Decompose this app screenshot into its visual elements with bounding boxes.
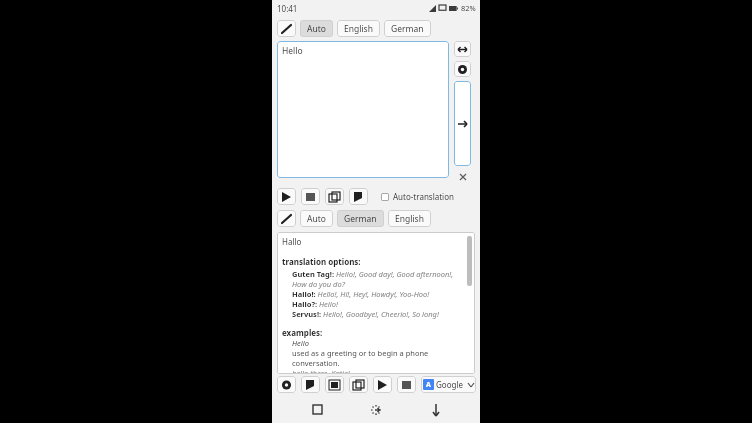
button[interactable]: Hide keyboard <box>421 396 451 423</box>
button[interactable]: Auto-translation <box>381 191 456 202</box>
button[interactable]: Select all <box>325 376 344 393</box>
button[interactable]: Edit target <box>277 210 296 227</box>
button[interactable]: Close <box>456 170 469 183</box>
button[interactable]: Copy <box>325 188 344 205</box>
button[interactable]: Play <box>373 376 392 393</box>
staticText: German <box>344 213 377 225</box>
staticText: Auto-translation <box>393 191 454 202</box>
staticText: English <box>344 23 373 35</box>
staticText: Guten Tag!: Hello!, Good day!, Good afte… <box>292 269 461 289</box>
staticText: hello there, Katie! <box>292 368 350 374</box>
staticText: translation options: <box>282 256 361 267</box>
button[interactable]: Home <box>361 396 391 423</box>
button[interactable]: Flag <box>349 188 368 205</box>
staticText: Hallo <box>282 236 302 247</box>
staticText: examples: <box>282 327 323 338</box>
button[interactable]: Clear <box>454 61 471 77</box>
button[interactable]: English <box>388 210 431 227</box>
staticText: German <box>391 23 424 35</box>
button[interactable]: Swap languages <box>454 41 471 57</box>
button[interactable]: Stop <box>301 188 320 205</box>
button[interactable]: Auto <box>300 210 333 227</box>
button[interactable]: Stop <box>397 376 416 393</box>
staticText: Google <box>436 379 463 390</box>
staticText: Servus!: Hello!, Goodbye!, Cheerio!, So … <box>292 309 439 319</box>
staticText: Auto <box>307 23 326 35</box>
staticText: English <box>395 213 424 225</box>
button[interactable]: Hello <box>277 41 449 178</box>
staticText: 10:41 <box>277 3 298 14</box>
button[interactable]: Flag <box>301 376 320 393</box>
staticText: Hallo!: Hello!, Hi!, Hey!, Howdy!, Yoo-H… <box>292 289 430 299</box>
button[interactable]: English <box>337 20 380 37</box>
button[interactable]: German <box>337 210 384 227</box>
staticText: Auto <box>307 213 326 225</box>
button[interactable]: Settings <box>277 376 296 393</box>
staticText: 82% <box>461 3 476 13</box>
button[interactable]: German <box>384 20 431 37</box>
button[interactable]: Copy <box>349 376 368 393</box>
button[interactable]: Recents <box>302 396 332 423</box>
staticText: Hello <box>282 45 303 57</box>
staticText: used as a greeting or to begin a phone c… <box>292 348 461 368</box>
button[interactable]: Hallo <box>277 232 475 374</box>
staticText: Hallo?: Hello! <box>292 299 338 309</box>
staticText: A <box>426 380 431 390</box>
staticText: Hello <box>292 338 309 348</box>
button[interactable]: Play <box>277 188 296 205</box>
button[interactable]: A <box>421 376 476 393</box>
button[interactable]: Edit <box>277 20 296 37</box>
button[interactable]: Translate <box>454 81 471 166</box>
button[interactable]: Auto <box>300 20 333 37</box>
